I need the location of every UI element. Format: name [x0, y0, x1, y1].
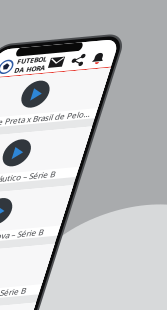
staticText: Figueirense x CRB – Série B: [11, 250, 113, 261]
button[interactable]: Paraná x Vila Nova – Série B: [5, 152, 127, 202]
staticText: Ponte Preta x Brasil de Pelotas – Série …: [11, 74, 123, 85]
staticText: Guarani x Criciúma – Série B: [11, 309, 114, 310]
staticText: Paraná x Vila Nova – Série B: [11, 192, 112, 202]
button[interactable]: Ponte Preta x Brasil de Pelotas – Série …: [5, 34, 127, 85]
button[interactable]: Guarani x Criciúma – Série B: [5, 269, 127, 310]
staticText: Oeste x Náutico – Série B: [11, 133, 105, 144]
button[interactable]: Oeste x Náutico – Série B: [5, 93, 127, 143]
button[interactable]: Figueirense x CRB – Série B: [5, 210, 127, 261]
